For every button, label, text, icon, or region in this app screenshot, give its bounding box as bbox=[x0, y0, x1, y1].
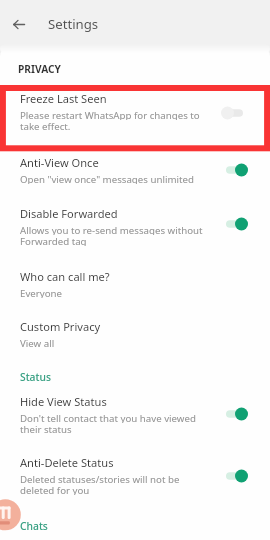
staticText: Open "view once" messages unlimited bbox=[20, 173, 194, 184]
button[interactable]: Disable Forwarded bbox=[0, 200, 270, 252]
staticText: Forwarded tag bbox=[20, 235, 87, 246]
staticText: deleted for you bbox=[20, 484, 90, 495]
staticText: Settings bbox=[48, 15, 99, 33]
button[interactable]: Switch on bbox=[226, 217, 252, 231]
button[interactable]: Back bbox=[6, 12, 31, 37]
button[interactable]: Custom Privacy bbox=[0, 313, 270, 354]
staticText: Anti-Delete Status bbox=[20, 455, 114, 470]
button[interactable]: Anti-View Once bbox=[0, 149, 270, 190]
staticText: Everyone bbox=[20, 287, 63, 298]
staticText: Chats bbox=[20, 519, 48, 533]
staticText: their status bbox=[20, 423, 72, 434]
staticText: View all bbox=[20, 337, 55, 348]
button[interactable]: Switch off bbox=[222, 106, 248, 120]
staticText: Custom Privacy bbox=[20, 319, 101, 334]
button[interactable]: Switch on bbox=[226, 163, 252, 177]
staticText: Anti-View Once bbox=[20, 155, 99, 170]
staticText: Who can call me? bbox=[20, 269, 110, 284]
staticText: Allows you to re-send messages without bbox=[20, 224, 203, 235]
staticText: Please restart WhatsApp for changes to bbox=[20, 109, 200, 120]
staticText: Don't tell contact that you have viewed bbox=[20, 412, 196, 423]
staticText: take effect. bbox=[20, 120, 71, 131]
button[interactable]: Switch on bbox=[226, 407, 252, 421]
staticText: Disable Forwarded bbox=[20, 206, 118, 221]
button[interactable]: Hide View Status bbox=[0, 388, 270, 440]
staticText: PRIVACY bbox=[18, 62, 61, 76]
button[interactable]: Switch on bbox=[226, 469, 252, 483]
button[interactable]: Who can call me? bbox=[0, 263, 270, 304]
staticText: Hide View Status bbox=[20, 394, 107, 409]
staticText: Freeze Last Seen bbox=[20, 91, 107, 106]
staticText: Status bbox=[20, 370, 51, 384]
button[interactable]: Anti-Delete Status bbox=[0, 449, 270, 501]
button[interactable]: Freeze Last Seen bbox=[0, 85, 270, 137]
staticText: Deleted statuses/stories will not be bbox=[20, 473, 180, 484]
